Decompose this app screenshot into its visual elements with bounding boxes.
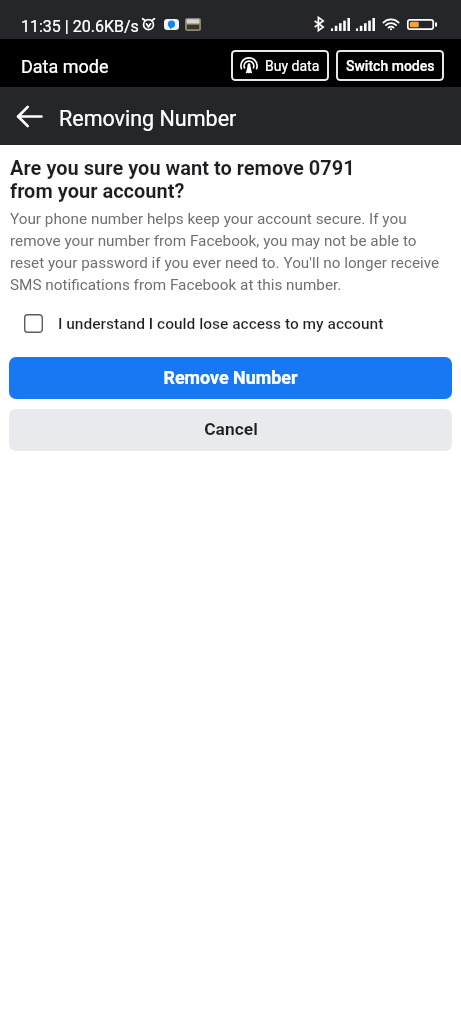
button[interactable]: I understand I could lose access to my a… (0, 311, 461, 336)
staticText: Are you sure you want to remove 0791 fro… (10, 157, 355, 203)
button[interactable]: Buy data (231, 50, 329, 81)
button[interactable]: Switch modes (336, 50, 444, 81)
button[interactable]: Remove Number (9, 357, 452, 399)
button[interactable]: Cancel (9, 409, 452, 451)
staticText: Remove Number (163, 367, 298, 388)
staticText: Removing Number (59, 106, 237, 131)
staticText: 11:35 | 20.6KB/s (21, 17, 139, 36)
staticText: Cancel (204, 419, 258, 439)
button[interactable]: Back (6, 93, 52, 139)
staticText: Your phone number helps keep your accoun… (10, 207, 447, 295)
staticText: I understand I could lose access to my a… (58, 315, 384, 333)
staticText: Switch modes (346, 58, 435, 74)
staticText: Buy data (265, 58, 320, 74)
staticText: Data mode (21, 56, 109, 77)
